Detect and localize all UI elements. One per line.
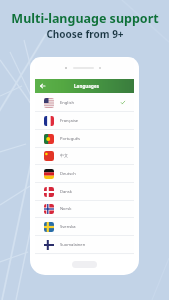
button[interactable]: Português [35,130,134,148]
staticText: Suomalainen [60,242,86,248]
button[interactable]: Deutsch [35,165,134,183]
button[interactable]: 中文 [35,147,134,165]
staticText: English [60,100,74,106]
staticText: Português [60,136,80,142]
staticText: Multi-language support [11,10,159,27]
button[interactable]: Dansk [35,183,134,201]
staticText: Deutsch [60,171,76,177]
staticText: 中文 [60,153,69,158]
staticText: Languages [74,83,100,89]
staticText: Norsk [60,206,72,212]
button[interactable]: Norsk [35,200,134,218]
staticText: Dansk [60,189,72,195]
staticText: Choose from 9+ [46,27,124,41]
button[interactable]: English [35,94,134,112]
staticText: Svenska [60,224,76,230]
staticText: Française [60,118,79,124]
button[interactable]: Svenska [35,218,134,236]
button[interactable]: Back [35,79,134,93]
button[interactable]: Suomalainen [35,236,134,254]
button[interactable]: Française [35,112,134,130]
button[interactable]: Back [35,79,50,93]
